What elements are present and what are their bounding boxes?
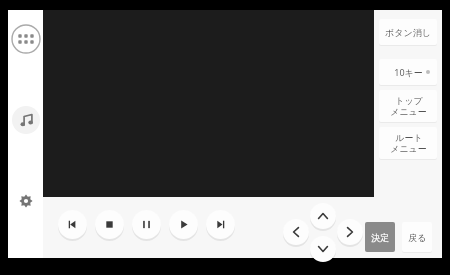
button[interactable]: Stop (95, 210, 124, 239)
button[interactable]: Up (310, 203, 336, 229)
button[interactable]: Music (12, 106, 40, 134)
button[interactable]: Down (310, 236, 336, 262)
staticText: トップ (395, 95, 423, 106)
button[interactable]: ルート (379, 127, 437, 159)
staticText: メニュー (390, 106, 427, 117)
button[interactable]: Right (337, 219, 363, 245)
button[interactable]: トップ (379, 90, 437, 122)
staticText: 決定 (371, 232, 389, 243)
button[interactable]: ボタン消し (379, 19, 437, 45)
staticText: 戻る (408, 232, 427, 243)
staticText: ボタン消し (385, 27, 431, 38)
button[interactable]: 10キー (379, 59, 437, 85)
button[interactable]: Pause (132, 210, 161, 239)
button[interactable]: Settings (13, 188, 39, 214)
staticText: 10キー (394, 66, 423, 78)
button[interactable]: 戻る (402, 222, 432, 252)
button[interactable]: Play (169, 210, 198, 239)
button[interactable]: 決定 (365, 222, 395, 252)
button[interactable]: Next (206, 210, 235, 239)
button[interactable]: Previous (58, 210, 87, 239)
staticText: メニュー (390, 143, 427, 154)
button[interactable]: Left (283, 219, 309, 245)
staticText: ルート (395, 132, 423, 143)
button[interactable]: Apps (11, 24, 41, 54)
